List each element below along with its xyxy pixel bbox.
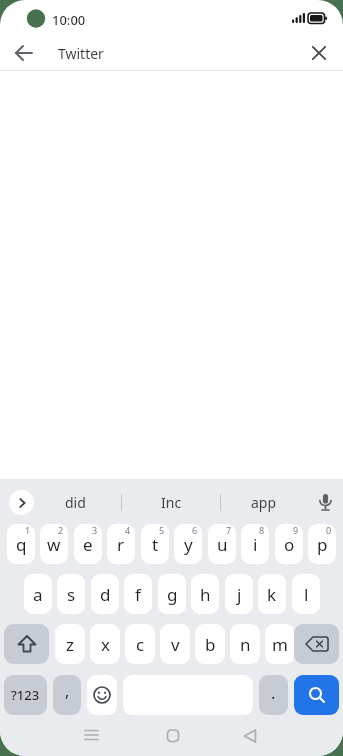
button[interactable]: Inc [131, 490, 211, 515]
button[interactable]: j [225, 574, 253, 614]
button[interactable]: w [40, 524, 68, 564]
button[interactable]: i [241, 524, 269, 564]
button[interactable]: b [195, 624, 225, 664]
staticText: 4 [125, 524, 131, 536]
button[interactable] [8, 37, 40, 69]
button[interactable]: r [107, 524, 135, 564]
button[interactable]: k [258, 574, 286, 614]
staticText: h [200, 583, 211, 606]
button[interactable]: x [90, 624, 120, 664]
staticText: app [251, 493, 277, 512]
button[interactable]: e [74, 524, 102, 564]
staticText: 7 [226, 524, 232, 536]
staticText: u [217, 533, 228, 556]
staticText: x [101, 633, 110, 656]
staticText: Twitter [58, 44, 104, 63]
staticText: a [33, 583, 43, 606]
staticText: 3 [92, 524, 98, 536]
staticText: n [240, 633, 251, 656]
button[interactable] [303, 37, 335, 69]
staticText: Inc [161, 493, 182, 512]
staticText: y [184, 533, 193, 556]
button[interactable] [313, 490, 338, 515]
button[interactable]: ?123 [4, 675, 47, 715]
button[interactable]: l [292, 574, 320, 614]
button[interactable]: t [141, 524, 169, 564]
staticText: 10:00 [52, 11, 86, 29]
staticText: c [136, 633, 145, 656]
button[interactable] [9, 490, 34, 515]
staticText: 2 [58, 524, 64, 536]
staticText: w [47, 533, 61, 556]
button[interactable]: v [160, 624, 190, 664]
button[interactable]: o [275, 524, 303, 564]
staticText: p [317, 533, 328, 556]
staticText: q [16, 533, 27, 556]
button[interactable]: y [174, 524, 202, 564]
button[interactable]: h [191, 574, 219, 614]
button[interactable] [71, 721, 113, 751]
staticText: o [284, 533, 295, 556]
button[interactable]: m [265, 624, 295, 664]
staticText: f [135, 583, 141, 606]
staticText: z [66, 633, 74, 656]
staticText: m [272, 633, 288, 656]
staticText: j [237, 583, 242, 606]
staticText: . [271, 682, 276, 704]
button[interactable] [4, 624, 49, 664]
staticText: r [117, 533, 125, 556]
button[interactable]: app [224, 490, 304, 515]
button[interactable]: . [259, 675, 288, 715]
staticText: g [167, 583, 178, 606]
staticText: v [171, 633, 180, 656]
staticText: d [100, 583, 111, 606]
staticText: did [65, 493, 86, 512]
staticText: b [205, 633, 216, 656]
button[interactable]: g [158, 574, 186, 614]
staticText: 1 [25, 524, 31, 536]
staticText: k [267, 583, 277, 606]
button[interactable]: did [35, 490, 115, 515]
staticText: i [253, 533, 258, 556]
button[interactable]: a [24, 574, 52, 614]
staticText: 6 [192, 524, 198, 536]
button[interactable] [229, 721, 271, 751]
staticText: t [152, 533, 159, 556]
staticText: s [67, 583, 76, 606]
button[interactable]: c [125, 624, 155, 664]
staticText: l [304, 583, 309, 606]
staticText: 5 [159, 524, 165, 536]
button[interactable]: , [53, 675, 81, 715]
staticText: 0 [326, 524, 332, 536]
staticText: 8 [259, 524, 265, 536]
staticText: ?123 [11, 686, 40, 704]
button[interactable] [294, 675, 339, 715]
staticText: , [65, 680, 70, 702]
staticText: 9 [293, 524, 299, 536]
button[interactable] [152, 721, 194, 751]
button[interactable] [87, 675, 117, 715]
button[interactable]: z [55, 624, 85, 664]
button[interactable]: q [7, 524, 35, 564]
button[interactable]: f [124, 574, 152, 614]
button[interactable]: n [230, 624, 260, 664]
button[interactable]: p [308, 524, 336, 564]
button[interactable]: d [91, 574, 119, 614]
button[interactable] [294, 624, 339, 664]
button[interactable]: u [208, 524, 236, 564]
staticText: e [83, 533, 93, 556]
button[interactable]: s [57, 574, 85, 614]
